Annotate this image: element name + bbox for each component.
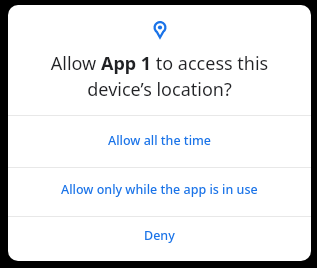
button[interactable]: Allow only while the app is in use [8, 168, 311, 216]
button[interactable]: Allow all the time [8, 116, 311, 167]
staticText: Allow all the time [108, 132, 212, 149]
staticText: Allow only while the app is in use [61, 181, 258, 198]
button[interactable]: Deny [8, 217, 311, 261]
staticText: Deny [144, 227, 175, 244]
staticText: Allow App 1 to access this device’s loca… [8, 51, 311, 101]
